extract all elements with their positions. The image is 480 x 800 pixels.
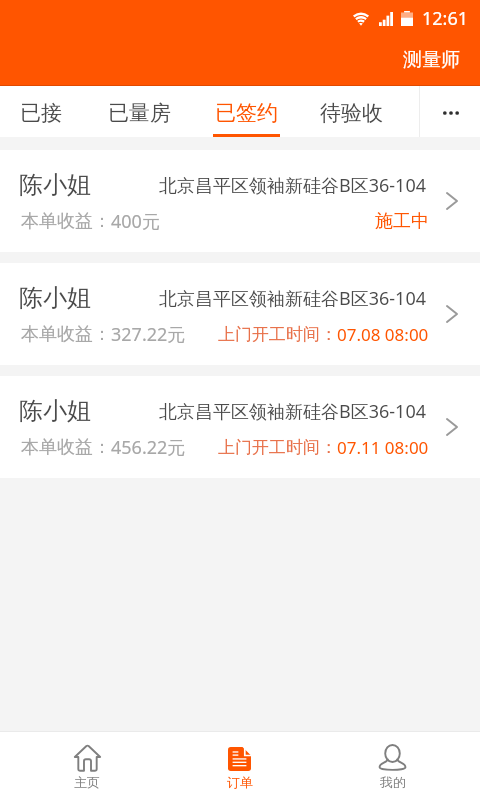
button[interactable]: 已量房 <box>82 86 197 137</box>
staticText: 327.22元 <box>111 322 186 347</box>
staticText: 本单收益： <box>21 436 111 459</box>
button[interactable]: 主页 <box>11 731 163 800</box>
staticText: 07.11 08:00 <box>337 436 429 459</box>
staticText: 上门开工时间： <box>218 324 337 345</box>
staticText: 本单收益： <box>21 323 111 346</box>
staticText: 已接 <box>20 100 62 126</box>
staticText: 我的 <box>380 774 406 790</box>
staticText: 测量师 <box>403 48 460 72</box>
staticText: 上门开工时间： <box>218 437 337 458</box>
staticText: 已量房 <box>108 100 171 126</box>
button[interactable]: 已接 <box>0 86 82 137</box>
staticText: 陈小姐 <box>19 396 91 426</box>
staticText: 待验收 <box>320 100 383 126</box>
staticText: 施工中 <box>375 210 429 233</box>
staticText: 陈小姐 <box>19 283 91 313</box>
button[interactable]: 我的 <box>316 731 469 800</box>
staticText: 12:61 <box>422 6 469 31</box>
staticText: 北京昌平区领袖新硅谷B区36-104 <box>159 286 426 311</box>
button[interactable]: More options <box>420 86 480 137</box>
staticText: 北京昌平区领袖新硅谷B区36-104 <box>159 173 426 198</box>
button[interactable]: 订单 <box>163 731 316 800</box>
staticText: 456.22元 <box>111 435 186 460</box>
button[interactable]: 陈小姐 <box>0 150 480 252</box>
button[interactable]: 已签约 <box>197 86 295 137</box>
staticText: 主页 <box>74 774 100 790</box>
staticText: 07.08 08:00 <box>337 323 429 346</box>
staticText: 本单收益： <box>21 210 111 233</box>
staticText: 400元 <box>111 209 160 234</box>
staticText: 订单 <box>227 774 253 790</box>
staticText: 已签约 <box>215 100 278 126</box>
button[interactable]: 陈小姐 <box>0 263 480 365</box>
staticText: 北京昌平区领袖新硅谷B区36-104 <box>159 399 426 424</box>
staticText: 陈小姐 <box>19 170 91 200</box>
button[interactable]: 待验收 <box>295 86 407 137</box>
button[interactable]: 陈小姐 <box>0 376 480 478</box>
